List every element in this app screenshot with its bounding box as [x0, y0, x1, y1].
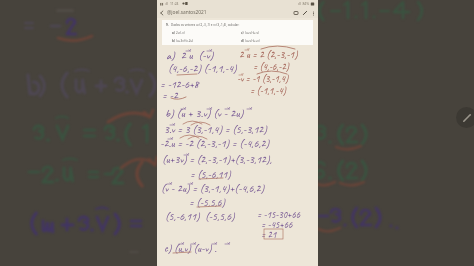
- staticText: (4,-6,-2) (-1,1,-4): [168, 62, 237, 76]
- staticText: (u+v)·(u-v): [245, 31, 259, 35]
- staticText: = 21: [261, 229, 277, 241]
- staticText: (v - 2u) = (3,-1,4)+(-4,6,2): [161, 182, 265, 196]
- staticText: = (4,-6,-2): [253, 61, 289, 73]
- staticText: = 21: [261, 229, 277, 241]
- staticText: -v = -1 (3,-1,4): [237, 73, 289, 85]
- staticText: (5,-6,11) (-5,5,6): [165, 210, 235, 224]
- staticText: (4,-6,-2) (-1,1,-4): [168, 62, 237, 76]
- staticText: b): [172, 39, 175, 43]
- staticText: 3.v = 3 (3,-1,4) = (5,-3,12): [164, 123, 267, 137]
- staticText: 3.v = 3 (3,-1,4) = (5,-3,12): [164, 123, 267, 137]
- button[interactable]: More options: [309, 9, 317, 17]
- staticText: b) (u + 3.v) (v - 2u): [165, 106, 244, 120]
- staticText: a): [172, 31, 175, 35]
- staticText: = -15-30+66: [257, 209, 301, 221]
- staticText: (u+3v) = (2,-3,-1)+(3,-3,12),: [162, 153, 272, 167]
- staticText: -2.u = -2 (2,-3,-1) = (-4,6,2): [160, 137, 270, 151]
- staticText: 2u·(-v): [176, 31, 185, 35]
- staticText: (5,-6,11) (-5,5,6): [165, 210, 235, 224]
- button[interactable]: Expand: [456, 107, 474, 128]
- staticText: (u+v)·(u+v): [245, 39, 260, 43]
- button[interactable]: Edit: [300, 8, 309, 17]
- staticText: = -12-6+8: [160, 78, 199, 92]
- staticText: b) (u + 3.v) (v - 2u): [165, 106, 244, 120]
- staticText: c): [241, 31, 244, 35]
- staticText: = (4,-6,-2): [253, 61, 289, 73]
- staticText: = (-5,5,6): [189, 196, 225, 209]
- staticText: Dados os vetores u=(2,-3,-1) e v=(3,-1,4…: [171, 23, 240, 27]
- staticText: (v - 2u) = (3,-1,4)+(-4,6,2): [161, 182, 265, 196]
- staticText: 2 u = 2 (2,-3,-1): [239, 48, 298, 61]
- staticText: -v = -1 (3,-1,4): [237, 73, 289, 85]
- staticText: c) (u.v) (u-v) .: [164, 242, 217, 256]
- staticText: ▮▮ ıll 11:24: [160, 1, 179, 6]
- staticText: = -2: [162, 89, 178, 103]
- staticText: = (-1,1,-4): [250, 85, 286, 97]
- staticText: (u+3v)·(v-2u): [176, 39, 194, 43]
- staticText: = -12-6+8: [160, 78, 199, 92]
- staticText: c) (u.v) (u-v) .: [164, 242, 217, 256]
- staticText: = -2: [162, 89, 178, 103]
- staticText: = -45+66: [261, 219, 293, 231]
- staticText: = -45+66: [261, 219, 293, 231]
- staticText: = (5,-6,11): [190, 168, 231, 181]
- staticText: a) 2 u (-v): [166, 48, 214, 62]
- staticText: 2 u = 2 (2,-3,-1): [239, 48, 298, 61]
- staticText: a) 2 u (-v): [166, 48, 214, 62]
- staticText: ıll 84%: [298, 1, 310, 6]
- button[interactable]: Crop: [291, 8, 300, 17]
- staticText: 9.: [166, 23, 169, 27]
- staticText: d): [241, 39, 244, 43]
- staticText: = (-1,1,-4): [250, 85, 286, 97]
- staticText: = (5,-6,11): [190, 168, 231, 181]
- staticText: @joel.santos2021: [167, 9, 207, 16]
- staticText: = (-5,5,6): [189, 196, 225, 209]
- button[interactable]: Back: [157, 8, 167, 18]
- staticText: = -15-30+66: [257, 209, 301, 221]
- staticText: (u+3v) = (2,-3,-1)+(3,-3,12),: [162, 153, 272, 167]
- staticText: -2.u = -2 (2,-3,-1) = (-4,6,2): [160, 137, 270, 151]
